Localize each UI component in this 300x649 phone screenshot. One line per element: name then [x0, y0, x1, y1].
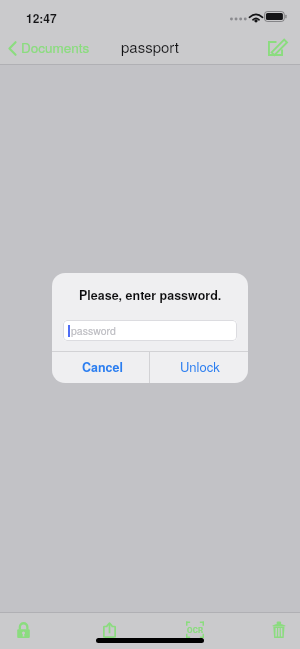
- button[interactable]: Documents: [7, 32, 91, 64]
- button[interactable]: Unlock: [150, 352, 248, 383]
- staticText: Documents: [21, 38, 90, 57]
- button[interactable]: Unlock: [8, 613, 40, 649]
- button[interactable]: Edit: [262, 32, 294, 64]
- staticText: password: [71, 323, 116, 338]
- button[interactable]: password: [63, 320, 237, 341]
- button[interactable]: Cancel: [52, 352, 149, 383]
- button[interactable]: Share: [94, 613, 126, 649]
- staticText: Please, enter password.: [79, 286, 222, 304]
- staticText: Unlock: [180, 357, 220, 376]
- button[interactable]: Recognize text: [177, 613, 213, 649]
- staticText: Cancel: [82, 358, 123, 376]
- staticText: OCR: [187, 625, 204, 635]
- staticText: passport: [121, 36, 179, 57]
- button[interactable]: Delete: [263, 613, 295, 649]
- staticText: 12:47: [26, 9, 57, 26]
